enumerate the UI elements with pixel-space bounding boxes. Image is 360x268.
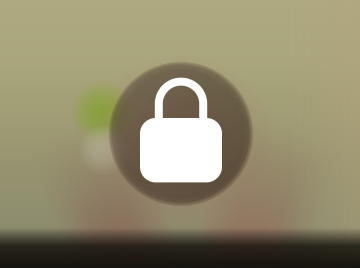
button[interactable]: Locked <box>112 65 249 202</box>
